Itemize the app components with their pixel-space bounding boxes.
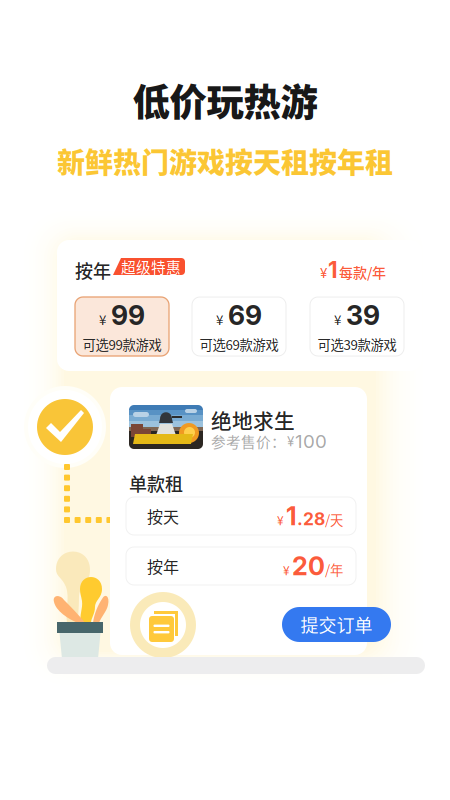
staticText: 绝地求生 <box>211 405 295 435</box>
staticText: ¥ <box>287 433 294 449</box>
staticText: ¥ <box>216 310 223 329</box>
staticText: ¥ <box>99 310 106 329</box>
staticText: 39 <box>346 299 380 331</box>
staticText: ¥ <box>320 265 327 281</box>
staticText: 提交订单 <box>300 611 372 638</box>
button[interactable]: 按天 <box>126 497 356 535</box>
button[interactable]: 提交订单 <box>282 607 391 642</box>
staticText: 按天 <box>147 504 179 528</box>
button[interactable]: 按年 <box>126 547 356 585</box>
staticText: 低价玩热游 <box>132 73 317 127</box>
staticText: .28 <box>297 508 325 529</box>
staticText: 可选69款游戏 <box>199 334 278 354</box>
staticText: ¥ <box>334 310 341 329</box>
staticText: 可选39款游戏 <box>317 334 396 354</box>
staticText: 20 <box>292 551 325 581</box>
staticText: ¥ <box>283 564 290 578</box>
staticText: 1 <box>286 501 297 531</box>
staticText: 单款租 <box>129 470 183 496</box>
staticText: 新鲜热门游戏按天租按年租 <box>57 141 393 181</box>
staticText: 可选99款游戏 <box>82 334 161 354</box>
staticText: 1 <box>328 256 338 283</box>
staticText: 参考售价： <box>211 431 286 452</box>
button[interactable]: ¥ <box>192 297 286 356</box>
staticText: 每款/年 <box>339 262 386 282</box>
button[interactable]: ¥ <box>75 297 169 356</box>
button[interactable]: ¥ <box>310 297 404 356</box>
staticText: ¥ <box>277 514 284 528</box>
staticText: 超级特惠 <box>121 256 181 277</box>
staticText: 99 <box>111 299 145 331</box>
staticText: /天 <box>325 510 343 529</box>
staticText: 按年 <box>75 257 111 283</box>
staticText: 100 <box>295 430 327 453</box>
staticText: 按年 <box>147 554 179 578</box>
staticText: 69 <box>228 299 262 331</box>
staticText: /年 <box>325 560 343 579</box>
